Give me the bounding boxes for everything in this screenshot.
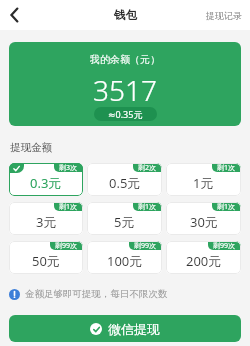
button[interactable]: 微信提现 [9, 315, 241, 342]
button[interactable]: 剩99次 [166, 241, 241, 274]
staticText: 剩3次 [59, 163, 78, 172]
staticText: 30元 [190, 213, 218, 231]
staticText: 3元 [36, 213, 57, 231]
staticText: 提现金额 [10, 141, 52, 154]
button[interactable]: 剩1次 [166, 163, 241, 196]
staticText: 我的余额（元） [90, 53, 160, 65]
staticText: 剩99次 [55, 241, 78, 250]
staticText: 1元 [193, 174, 214, 192]
staticText: 钱包 [114, 8, 137, 22]
staticText: 0.5元 [109, 174, 141, 192]
button[interactable]: 剩1次 [166, 202, 241, 235]
button[interactable]: 剩2次 [87, 163, 162, 196]
button[interactable]: 提现记录 [198, 0, 250, 30]
button[interactable]: Back [0, 0, 28, 30]
button[interactable]: 剩1次 [87, 202, 162, 235]
staticText: 剩1次 [217, 202, 236, 211]
staticText: 5元 [114, 213, 135, 231]
staticText: 50元 [32, 252, 60, 270]
button[interactable]: 我的余额（元） [9, 42, 241, 126]
staticText: 剩99次 [134, 241, 157, 250]
staticText: ≈0.35元 [108, 108, 143, 120]
button[interactable]: 剩99次 [9, 241, 83, 274]
staticText: 剩99次 [213, 241, 236, 250]
staticText: 剩2次 [138, 163, 157, 172]
button[interactable]: 剩1次 [9, 202, 83, 235]
staticText: 0.3元 [30, 174, 62, 192]
staticText: 200元 [186, 252, 222, 270]
button[interactable]: 剩3次 [9, 163, 83, 196]
staticText: 微信提现 [108, 321, 160, 337]
staticText: 提现记录 [206, 10, 242, 21]
staticText: 金额足够即可提现，每日不限次数 [25, 288, 168, 300]
staticText: 剩1次 [138, 202, 157, 211]
staticText: 剩1次 [59, 202, 78, 211]
staticText: 100元 [107, 252, 143, 270]
staticText: 3517 [93, 71, 157, 101]
staticText: 剩1次 [217, 163, 236, 172]
button[interactable]: 剩99次 [87, 241, 162, 274]
